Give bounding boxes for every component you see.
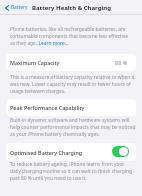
staticText: Phone batteries, like all rechargeable b… <box>10 26 136 47</box>
button[interactable]: Optimised Battery Charging toggle <box>112 146 129 157</box>
staticText: To reduce battery ageing, iPhone learns … <box>10 161 136 182</box>
staticText: Optimised Battery Charging <box>10 149 83 156</box>
staticText: Battery Health & Charging <box>32 4 111 12</box>
staticText: Peak Performance Capability <box>10 104 85 111</box>
button[interactable]: Battery <box>5 4 28 11</box>
button[interactable]: Maximum Capacity <box>6 54 136 71</box>
staticText: 88 % <box>115 59 128 67</box>
staticText: Maximum Capacity <box>10 59 60 66</box>
staticText: This is a measure of battery capacity re… <box>10 74 136 95</box>
staticText: Battery <box>11 4 28 11</box>
button[interactable]: Optimised Battery Charging <box>6 143 136 161</box>
button[interactable]: Peak Performance Capability <box>6 99 136 116</box>
staticText: Built-in dynamic software and hardware s… <box>10 117 136 138</box>
